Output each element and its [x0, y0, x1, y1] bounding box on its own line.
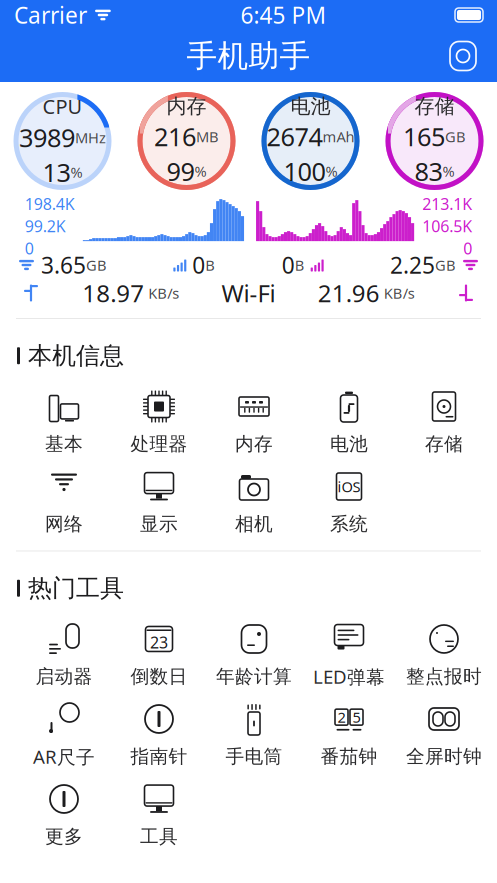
staticText: GB [435, 255, 456, 275]
button[interactable]: LED弹幕 [301, 617, 396, 693]
staticText: 电池 [330, 432, 368, 455]
staticText: 电池 [290, 94, 330, 119]
staticText: 100 [283, 154, 325, 188]
staticText: 倒数日 [130, 665, 187, 688]
staticText: 网络 [45, 512, 83, 535]
staticText: 6:45 PM [240, 0, 326, 30]
staticText: 0 [463, 238, 472, 259]
button[interactable]: 手电筒 [206, 697, 301, 773]
staticText: 本机信息 [28, 341, 124, 370]
staticText: 0 [282, 250, 295, 280]
button[interactable]: 2 [301, 697, 396, 773]
staticText: 手机助手 [186, 37, 310, 75]
staticText: KB/s [384, 283, 415, 303]
staticText: Wi-Fi [221, 277, 275, 309]
staticText: 21.96 [318, 277, 380, 309]
staticText: 83 [414, 154, 442, 188]
staticText: 106.5K [422, 215, 472, 237]
button[interactable]: 全屏时钟 [396, 697, 491, 773]
button[interactable]: 电池 [301, 384, 396, 460]
staticText: 18.97 [82, 277, 144, 309]
button[interactable]: 基本 [16, 384, 111, 460]
staticText: 216 [154, 120, 196, 153]
staticText: 存储 [414, 94, 454, 119]
button[interactable]: 相机 [206, 464, 301, 540]
staticText: 热门工具 [28, 573, 124, 603]
staticText: iOS [337, 477, 360, 496]
staticText: KB/s [148, 283, 179, 303]
staticText: MHz [75, 128, 106, 147]
staticText: 内存 [235, 432, 273, 455]
staticText: 13 [42, 155, 70, 189]
staticText: CPU [42, 93, 82, 120]
button[interactable]: 处理器 [111, 384, 206, 460]
staticText: 手电筒 [225, 745, 282, 768]
staticText: 0 [192, 250, 205, 280]
staticText: 3.65 [41, 250, 86, 280]
staticText: GB [86, 255, 107, 275]
button[interactable]: iOS [301, 464, 396, 540]
staticText: 213.1K [422, 193, 472, 214]
staticText: AR尺子 [33, 744, 95, 769]
staticText: 2 [337, 707, 345, 727]
button[interactable]: AR尺子 [16, 697, 111, 773]
staticText: LED弹幕 [313, 664, 385, 689]
staticText: 更多 [45, 825, 83, 848]
staticText: mAh [322, 127, 354, 146]
button[interactable]: 设置 [441, 34, 485, 78]
staticText: % [325, 161, 337, 181]
staticText: B [205, 255, 215, 275]
staticText: 指南针 [130, 745, 187, 768]
staticText: 处理器 [130, 432, 187, 455]
staticText: 23 [150, 632, 168, 653]
staticText: 启动器 [35, 665, 92, 688]
button[interactable]: 显示 [111, 464, 206, 540]
button[interactable]: 整点报时 [396, 617, 491, 693]
button[interactable]: 内存 [206, 384, 301, 460]
staticText: 内存 [166, 94, 206, 119]
staticText: 5 [352, 707, 360, 727]
staticText: 0 [25, 238, 34, 259]
staticText: 显示 [140, 512, 178, 535]
staticText: 3989 [19, 121, 75, 154]
staticText: 存储 [425, 432, 463, 455]
button[interactable]: 更多 [16, 777, 111, 853]
staticText: 165 [403, 120, 445, 153]
button[interactable]: 存储 [396, 384, 491, 460]
staticText: % [442, 161, 454, 181]
staticText: B [295, 255, 305, 275]
button[interactable]: 23 [111, 617, 206, 693]
staticText: 系统 [330, 512, 368, 535]
button[interactable]: 年龄计算 [206, 617, 301, 693]
staticText: 99 [166, 154, 194, 188]
button[interactable]: 启动器 [16, 617, 111, 693]
button[interactable]: 指南针 [111, 697, 206, 773]
staticText: 198.4K [25, 193, 75, 214]
staticText: Carrier [14, 0, 87, 30]
staticText: 整点报时 [406, 665, 482, 688]
staticText: 番茄钟 [320, 745, 377, 768]
button[interactable]: 网络 [16, 464, 111, 540]
staticText: 全屏时钟 [406, 745, 482, 768]
staticText: 相机 [235, 512, 273, 535]
staticText: % [194, 161, 206, 181]
staticText: 基本 [45, 432, 83, 455]
staticText: 99.2K [25, 215, 66, 237]
button[interactable]: 工具 [111, 777, 206, 853]
staticText: % [70, 162, 82, 182]
staticText: 工具 [140, 825, 178, 848]
staticText: MB [196, 127, 219, 146]
staticText: 年龄计算 [216, 665, 292, 688]
staticText: 2.25 [390, 250, 435, 280]
staticText: GB [445, 127, 466, 146]
staticText: 2674 [266, 120, 322, 153]
